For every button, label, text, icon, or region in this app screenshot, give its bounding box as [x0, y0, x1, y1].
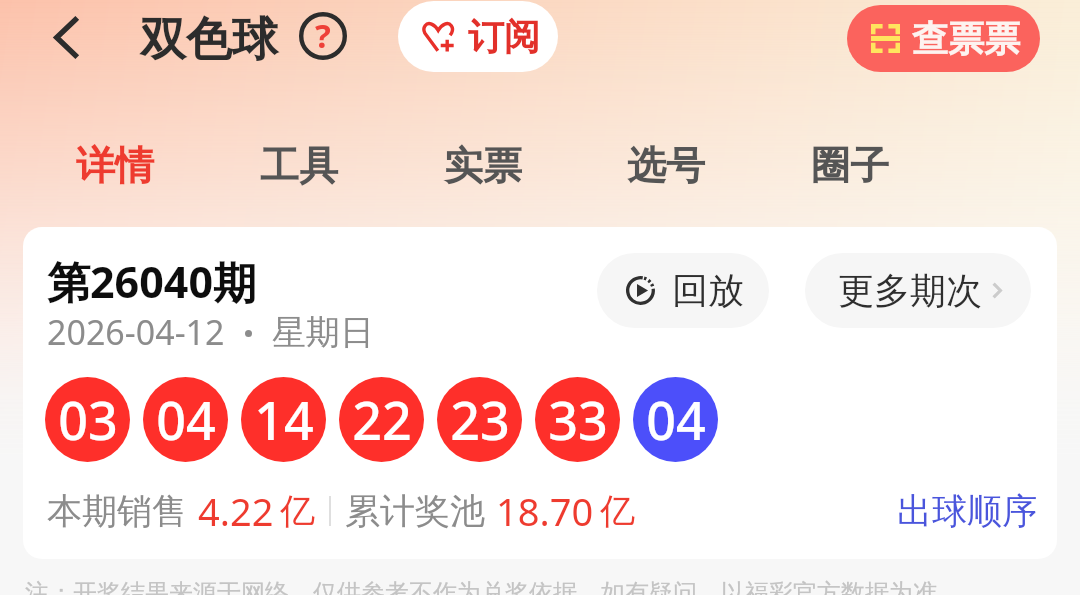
staticText: 实票 — [444, 141, 522, 190]
button[interactable]: 04 — [633, 377, 718, 462]
staticText: 工具 — [260, 141, 338, 190]
button[interactable]: 出球顺序 — [889, 481, 1045, 541]
staticText: 本期销售 — [47, 489, 187, 533]
staticText: 04 — [646, 384, 706, 455]
button[interactable]: 工具 — [211, 118, 387, 212]
staticText: 出球顺序 — [897, 489, 1037, 533]
button[interactable]: 03 — [45, 377, 130, 462]
staticText: 2026-04-12 — [47, 309, 225, 355]
staticText: 亿 — [280, 489, 315, 533]
button[interactable]: 33 — [535, 377, 620, 462]
staticText: 14 — [254, 384, 314, 455]
staticText: 33 — [548, 384, 608, 455]
button[interactable]: 实票 — [395, 118, 571, 212]
staticText: 星期日 — [272, 311, 374, 354]
button[interactable]: 回放 — [597, 253, 769, 328]
staticText: 详情 — [76, 141, 154, 190]
staticText: 23 — [450, 384, 510, 455]
staticText: 更多期次 — [838, 268, 982, 313]
staticText: 04 — [156, 384, 216, 455]
staticText: 第26040期 — [47, 252, 256, 311]
staticText: 累计奖池 — [345, 489, 485, 533]
button[interactable]: 14 — [241, 377, 326, 462]
button[interactable]: Help — [299, 12, 347, 60]
button[interactable]: Back — [38, 9, 94, 65]
button[interactable]: 04 — [143, 377, 228, 462]
button[interactable]: 更多期次 — [805, 253, 1031, 328]
staticText: 4.22 — [198, 485, 274, 537]
staticText: 22 — [352, 384, 412, 455]
staticText: ? — [315, 13, 331, 58]
staticText: 订阅 — [468, 14, 540, 59]
staticText: 双色球 — [140, 11, 278, 69]
button[interactable]: 23 — [437, 377, 522, 462]
staticText: 回放 — [672, 268, 744, 313]
staticText: 圈子 — [811, 141, 889, 190]
staticText: 查票票 — [912, 16, 1020, 61]
staticText: 18.70 — [496, 485, 594, 537]
button[interactable]: 订阅 — [398, 1, 558, 72]
button[interactable]: 查票票 — [847, 5, 1040, 72]
staticText: 03 — [58, 384, 118, 455]
button[interactable]: 圈子 — [762, 118, 938, 212]
button[interactable]: 选号 — [578, 118, 754, 212]
button[interactable]: 详情 — [27, 118, 203, 212]
staticText: 注：开奖结果来源于网络，仅供参考不作为兑奖依据，如有疑问，以福彩官方数据为准 — [25, 578, 937, 595]
staticText: 选号 — [627, 141, 705, 190]
staticText: 亿 — [600, 489, 635, 533]
button[interactable]: 22 — [339, 377, 424, 462]
